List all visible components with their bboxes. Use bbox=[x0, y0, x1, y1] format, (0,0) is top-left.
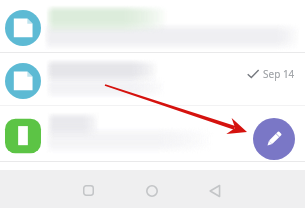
button[interactable]: Back bbox=[200, 176, 229, 205]
staticText: Sep 14 bbox=[263, 67, 295, 81]
button[interactable]: Spreadsheet bbox=[0, 106, 305, 161]
button[interactable]: Create new document bbox=[253, 118, 295, 160]
button[interactable]: Document, Sep 15 bbox=[0, 0, 305, 52]
button[interactable]: Home bbox=[137, 176, 166, 205]
button[interactable]: Recent apps bbox=[74, 176, 103, 205]
button[interactable]: Document, Sep 14 bbox=[0, 53, 305, 105]
